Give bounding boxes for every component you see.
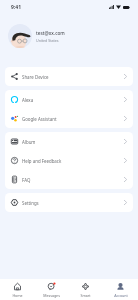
button[interactable]: FAQ bbox=[5, 170, 133, 189]
staticText: test@xx.com bbox=[36, 30, 65, 36]
staticText: Smart bbox=[80, 293, 91, 298]
staticText: Settings bbox=[22, 200, 39, 206]
staticText: Google Assistant bbox=[22, 116, 57, 122]
button[interactable]: Messages bbox=[34, 279, 68, 300]
staticText: FAQ bbox=[22, 177, 31, 183]
button[interactable]: Settings bbox=[5, 193, 133, 212]
staticText: Alexa bbox=[22, 97, 34, 103]
button[interactable]: Account bbox=[103, 279, 138, 300]
staticText: Messages bbox=[43, 293, 60, 298]
button[interactable]: Google Assistant bbox=[5, 109, 133, 128]
button[interactable]: Help and Feedback bbox=[5, 151, 133, 170]
staticText: Share Device bbox=[22, 74, 49, 80]
button[interactable]: Share Device bbox=[5, 67, 133, 86]
staticText: Home bbox=[12, 293, 23, 298]
button[interactable]: Alexa bbox=[5, 90, 133, 109]
staticText: Help and Feedback bbox=[22, 158, 62, 164]
staticText: Album bbox=[22, 139, 36, 145]
button[interactable]: Smart bbox=[68, 279, 103, 300]
button[interactable]: Album bbox=[5, 132, 133, 151]
staticText: 9:41 bbox=[11, 4, 21, 11]
button[interactable]: Home bbox=[0, 279, 34, 300]
staticText: United States bbox=[36, 38, 59, 43]
staticText: Account bbox=[114, 293, 128, 298]
